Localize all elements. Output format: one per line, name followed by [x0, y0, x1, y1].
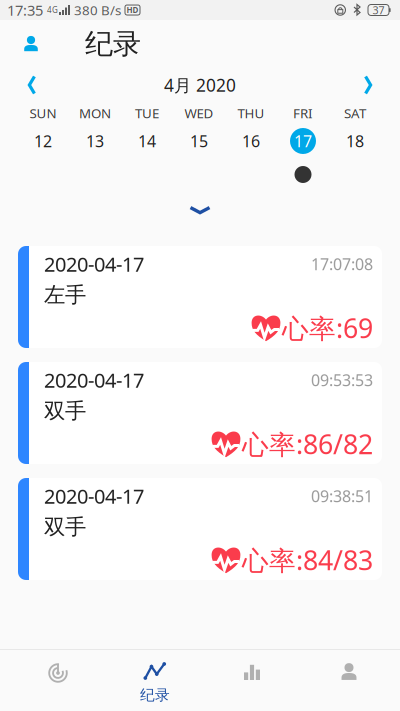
- staticText: WED: [184, 104, 213, 122]
- staticText: 双手: [44, 514, 86, 540]
- button[interactable]: 纪录: [106, 650, 203, 711]
- button[interactable]: Next month: [346, 70, 390, 100]
- staticText: 双手: [44, 398, 86, 424]
- staticText: 心率:69: [282, 310, 373, 346]
- staticText: TUE: [135, 104, 159, 122]
- staticText: SAT: [344, 104, 366, 122]
- staticText: 380 B/s: [74, 1, 121, 19]
- button[interactable]: 2020-04-17: [18, 362, 382, 464]
- staticText: 17:35: [7, 0, 43, 20]
- button[interactable]: WED: [173, 102, 225, 183]
- staticText: 18: [346, 130, 364, 152]
- button[interactable]: THU: [225, 102, 277, 183]
- staticText: 12: [34, 130, 52, 152]
- button[interactable]: TUE: [121, 102, 173, 183]
- staticText: 09:53:53: [311, 369, 373, 391]
- button[interactable]: MON: [69, 102, 121, 183]
- staticText: 17:07:08: [311, 253, 373, 275]
- button[interactable]: SAT: [329, 102, 381, 183]
- button[interactable]: 统计: [203, 650, 300, 711]
- staticText: 4月 2020: [164, 73, 236, 96]
- staticText: MON: [79, 104, 111, 122]
- button[interactable]: 我的: [300, 650, 397, 711]
- staticText: 14: [138, 130, 156, 152]
- staticText: 心率:86/82: [242, 426, 373, 462]
- button[interactable]: Account: [9, 20, 53, 68]
- button[interactable]: Expand calendar: [165, 204, 235, 216]
- staticText: 17: [294, 130, 312, 152]
- staticText: FRI: [293, 104, 313, 122]
- staticText: 15: [190, 130, 208, 152]
- button[interactable]: Previous month: [10, 70, 54, 100]
- staticText: 2020-04-17: [44, 367, 144, 393]
- staticText: THU: [237, 104, 264, 122]
- button[interactable]: 2020-04-17: [18, 478, 382, 580]
- button[interactable]: SUN: [17, 102, 69, 183]
- staticText: 2020-04-17: [44, 483, 144, 509]
- staticText: 37: [372, 3, 384, 17]
- staticText: 纪录: [140, 686, 170, 704]
- staticText: 心率:84/83: [242, 542, 373, 578]
- staticText: 16: [242, 130, 260, 152]
- button[interactable]: 2020-04-17: [18, 246, 382, 348]
- staticText: 纪录: [85, 27, 141, 61]
- staticText: SUN: [29, 104, 56, 122]
- button[interactable]: FRI: [277, 102, 329, 183]
- staticText: HD: [126, 5, 138, 15]
- staticText: 4G: [47, 5, 58, 15]
- staticText: 左手: [44, 282, 86, 308]
- staticText: 13: [86, 130, 104, 152]
- staticText: 2020-04-17: [44, 251, 144, 277]
- staticText: 09:38:51: [311, 485, 373, 507]
- button[interactable]: 测量: [9, 650, 106, 711]
